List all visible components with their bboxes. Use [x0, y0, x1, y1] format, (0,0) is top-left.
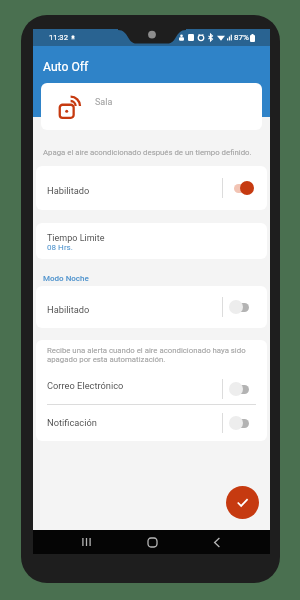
staticText: Auto Off	[43, 60, 89, 74]
button[interactable]: Habilitado	[36, 166, 267, 210]
staticText: Habilitado	[47, 185, 90, 196]
button[interactable]: Guardar	[226, 486, 259, 519]
button[interactable]: Back	[205, 530, 229, 554]
staticText: Modo Noche	[43, 274, 89, 283]
button[interactable]: Sala	[41, 83, 262, 130]
button[interactable]: Notificación	[36, 405, 267, 441]
staticText: Correo Electrónico	[47, 380, 124, 391]
staticText: 11:32	[49, 33, 68, 42]
button[interactable]: Home	[140, 530, 164, 554]
staticText: Habilitado	[47, 304, 90, 315]
button[interactable]: Correo Electrónico	[36, 374, 267, 404]
staticText: Tiempo Limite	[47, 233, 105, 244]
staticText: Notificación	[47, 417, 97, 428]
staticText: 87%	[234, 33, 249, 42]
button[interactable]: Tiempo Limite	[36, 223, 267, 259]
staticText: 08 Hrs.	[47, 242, 73, 251]
button[interactable]: Recents	[74, 530, 98, 554]
staticText: Sala	[95, 97, 113, 108]
staticText: Apaga el aire acondicionado después de u…	[43, 148, 252, 157]
button[interactable]: Habilitado	[36, 286, 267, 328]
staticText: Recibe una alerta cuando el aire acondic…	[47, 346, 247, 364]
